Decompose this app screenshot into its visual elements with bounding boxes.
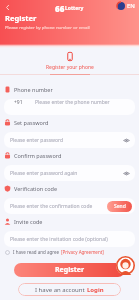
staticText: Please enter the phone number [35, 99, 110, 106]
staticText: Please enter password again [10, 170, 78, 177]
button[interactable]: Customer service [116, 256, 135, 275]
staticText: Register [55, 265, 85, 275]
button[interactable]: Show password [121, 168, 131, 178]
staticText: Set password [14, 119, 49, 126]
staticText: Register your phone [46, 64, 94, 71]
button[interactable]: Please enter the confirmation code [4, 198, 135, 214]
staticText: Please enter the invitation code (option… [10, 236, 108, 243]
staticText: I have an account [35, 286, 87, 294]
staticText: +91 [14, 99, 23, 106]
button[interactable]: Back [1, 1, 13, 13]
button[interactable]: Register your phone [46, 52, 94, 71]
button[interactable]: Please enter the invitation code (option… [4, 231, 135, 247]
staticText: Please enter the confirmation code [10, 203, 93, 210]
staticText: Phone number [14, 86, 53, 93]
staticText: Invite code [14, 218, 43, 225]
button[interactable]: Please enter password [4, 132, 135, 148]
staticText: EN [127, 2, 135, 10]
button[interactable]: Language EN [117, 2, 135, 10]
staticText: Verification code [14, 185, 58, 192]
staticText: Confirm password [14, 152, 62, 159]
button[interactable]: Send [107, 201, 132, 212]
staticText: [Privacy Agreement] [61, 249, 104, 255]
staticText: Register [5, 13, 37, 23]
staticText: Login [87, 286, 104, 294]
staticText: Lottery [65, 5, 84, 12]
staticText: Send [114, 203, 126, 210]
button[interactable]: +91 [4, 99, 135, 115]
staticText: Please enter password [10, 137, 64, 144]
button[interactable]: Please enter password again [4, 165, 135, 181]
staticText: I have read and agree [13, 249, 61, 255]
button[interactable]: Show password [121, 135, 131, 145]
button[interactable]: I have read and agree [5, 249, 104, 255]
button[interactable]: Register [14, 263, 125, 277]
staticText: Please register by phone number or email [5, 24, 90, 30]
staticText: 66 [55, 3, 65, 14]
button[interactable]: I have an account [18, 283, 121, 296]
